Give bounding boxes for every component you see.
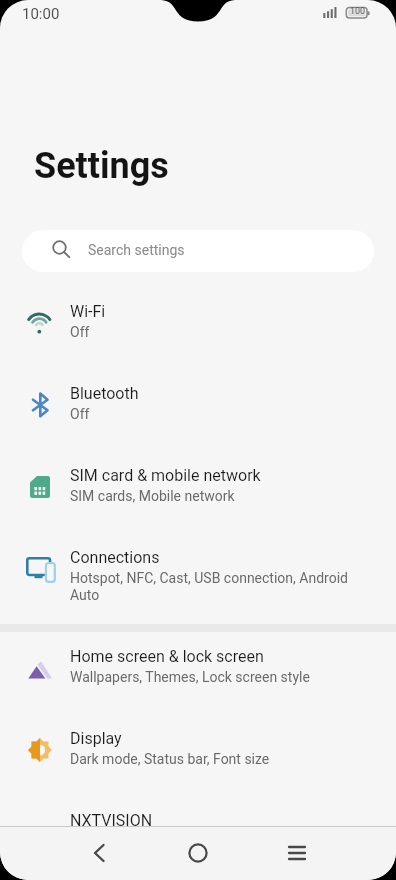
staticText: SIM card & mobile network — [70, 466, 261, 485]
staticText: Off — [70, 324, 90, 340]
staticText: Dark mode, Status bar, Font size — [70, 751, 270, 767]
staticText: Hotspot, NFC, Cast, USB connection, Andr… — [70, 570, 348, 586]
staticText: Connections — [70, 548, 160, 567]
button[interactable]: Bluetooth — [0, 369, 396, 451]
button[interactable]: Search settings — [22, 230, 374, 272]
staticText: 100 — [350, 6, 366, 17]
staticText: Auto — [70, 587, 100, 603]
staticText: Home screen & lock screen — [70, 647, 264, 666]
staticText: 10:00 — [22, 5, 60, 23]
staticText: Display — [70, 729, 122, 748]
staticText: NXTVISION — [70, 811, 153, 830]
button[interactable]: Wi-Fi — [0, 287, 396, 369]
staticText: Wallpapers, Themes, Lock screen style — [70, 669, 310, 685]
button[interactable] — [267, 826, 327, 880]
staticText: Wi-Fi — [70, 302, 106, 321]
button[interactable]: SIM card & mobile network — [0, 451, 396, 533]
button[interactable]: Connections — [0, 533, 396, 624]
button[interactable]: Home screen & lock screen — [0, 632, 396, 714]
staticText: SIM cards, Mobile network — [70, 488, 235, 504]
staticText: Bluetooth — [70, 384, 139, 403]
staticText: Settings — [34, 145, 169, 187]
staticText: Off — [70, 406, 90, 422]
button[interactable]: Display — [0, 714, 396, 796]
button[interactable] — [168, 826, 228, 880]
button[interactable]: NXTVISION — [0, 796, 396, 878]
staticText: Search settings — [88, 242, 185, 258]
button[interactable] — [69, 826, 129, 880]
